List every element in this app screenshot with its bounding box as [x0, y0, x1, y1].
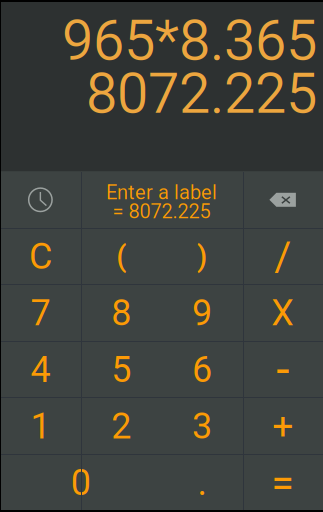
staticText: 6: [192, 348, 212, 391]
button[interactable]: (: [81, 228, 162, 285]
button[interactable]: C: [0, 228, 81, 285]
staticText: 9: [192, 292, 212, 334]
staticText: /: [274, 232, 291, 281]
button[interactable]: +: [242, 398, 323, 454]
staticText: = 8072.225: [112, 200, 210, 223]
staticText: 1: [30, 405, 50, 447]
button[interactable]: 2: [81, 398, 162, 454]
button[interactable]: 1: [0, 398, 81, 454]
button[interactable]: 4: [0, 341, 81, 398]
staticText: 5: [111, 348, 131, 391]
staticText: (: [116, 239, 126, 274]
button[interactable]: .: [161, 454, 242, 511]
staticText: 965*8.365: [62, 8, 317, 73]
button[interactable]: ): [161, 228, 242, 285]
button[interactable]: X: [242, 285, 323, 341]
staticText: .: [197, 462, 206, 504]
staticText: 3: [192, 405, 212, 447]
button[interactable]: Backspace: [242, 171, 323, 228]
button[interactable]: 8: [81, 285, 162, 341]
button[interactable]: =: [242, 454, 323, 511]
button[interactable]: 5: [81, 341, 162, 398]
staticText: 0: [71, 462, 91, 504]
staticText: 7: [30, 292, 50, 334]
staticText: Enter a label: [106, 181, 217, 204]
staticText: 8: [111, 292, 131, 334]
button[interactable]: 6: [161, 341, 242, 398]
staticText: -: [276, 341, 289, 398]
button[interactable]: /: [242, 228, 323, 285]
staticText: X: [271, 292, 294, 334]
staticText: 2: [111, 405, 131, 447]
staticText: =: [271, 459, 294, 507]
button[interactable]: History: [0, 171, 81, 228]
staticText: ): [197, 239, 207, 274]
button[interactable]: 3: [161, 398, 242, 454]
staticText: 4: [30, 348, 50, 391]
staticText: +: [272, 404, 293, 448]
button[interactable]: 9: [161, 285, 242, 341]
button[interactable]: Enter a label: [81, 171, 242, 228]
button[interactable]: 0: [0, 454, 161, 511]
staticText: 8072.225: [86, 61, 317, 126]
staticText: C: [29, 235, 52, 277]
button[interactable]: 7: [0, 285, 81, 341]
button[interactable]: -: [242, 341, 323, 398]
